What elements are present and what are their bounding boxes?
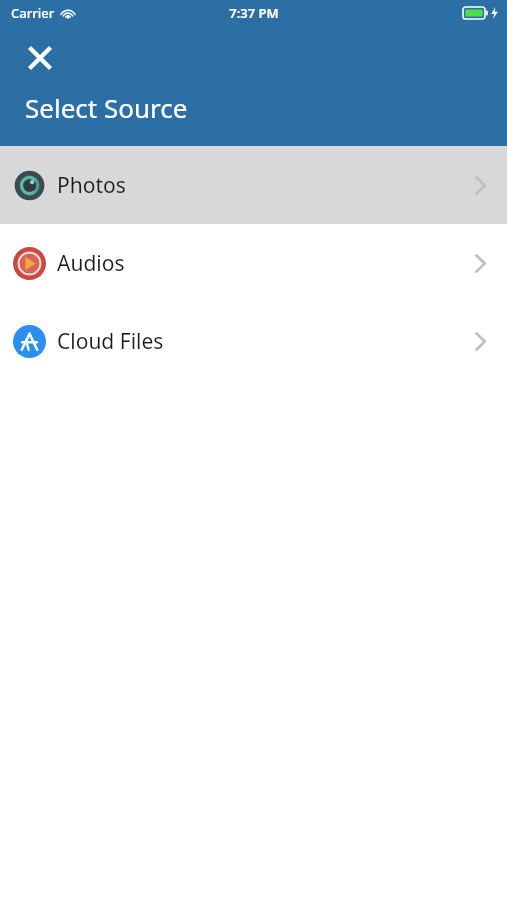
button[interactable]: Photos [0,146,507,224]
staticText: Carrier [11,4,55,22]
staticText: Audios [57,249,125,278]
staticText: 7:37 PM [229,4,279,22]
staticText: Select Source [25,90,188,125]
button[interactable]: Audios [0,224,507,302]
button[interactable]: Cloud Files [0,302,507,380]
button[interactable]: Close [14,32,66,84]
staticText: Photos [57,171,126,200]
staticText: Cloud Files [57,327,164,356]
